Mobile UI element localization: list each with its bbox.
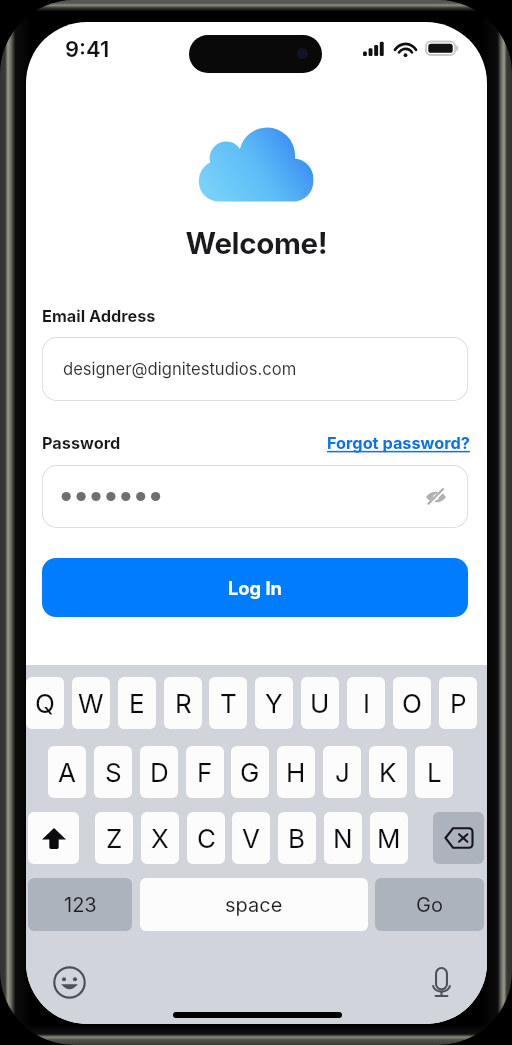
staticText: F [197,757,213,788]
button[interactable]: B [278,812,316,864]
staticText: Y [265,688,283,719]
button[interactable]: Z [95,812,133,864]
staticText: E [129,688,145,719]
staticText: 9:41 [65,36,110,63]
staticText: designer@dignitestudios.com [63,359,297,379]
staticText: N [333,823,353,854]
staticText: 123 [64,893,97,917]
button[interactable]: W [72,677,110,729]
button[interactable]: Log In [42,558,468,617]
button[interactable]: Emoji keyboard [53,966,86,999]
button[interactable]: O [393,677,431,729]
button[interactable]: G [231,746,269,798]
staticText: Password [42,433,121,453]
button[interactable]: S [94,746,132,798]
button[interactable]: L [415,746,453,798]
button[interactable]: designer@dignitestudios.com [42,337,468,401]
staticText: T [220,688,237,719]
staticText: Welcome! [26,225,487,261]
button[interactable]: Forgot password? [327,433,470,453]
button[interactable]: space [140,878,368,931]
button[interactable]: J [323,746,361,798]
staticText: H [286,757,306,788]
staticText: S [105,757,122,788]
staticText: Q [35,688,55,719]
staticText: L [427,757,442,788]
button[interactable]: X [141,812,179,864]
staticText: Email Address [42,306,156,326]
button[interactable]: R [164,677,202,729]
staticText: C [197,823,216,854]
button[interactable]: 123 [28,878,132,931]
staticText: O [402,688,422,719]
button[interactable]: Show password [42,465,468,528]
button[interactable]: T [209,677,247,729]
button[interactable]: Go [375,878,484,931]
staticText: Z [106,823,123,854]
staticText: W [78,688,104,719]
button[interactable]: Show password [420,465,452,528]
button[interactable]: P [439,677,477,729]
staticText: Forgot password? [327,433,470,453]
staticText: R [175,688,192,719]
button[interactable]: M [370,812,408,864]
staticText: M [377,823,401,854]
staticText: space [225,893,283,917]
button[interactable]: Backspace [433,812,484,864]
button[interactable]: N [324,812,362,864]
staticText: Go [416,893,443,917]
staticText: A [58,757,76,788]
button[interactable]: H [277,746,315,798]
staticText: P [450,688,467,719]
staticText: Log In [228,577,282,599]
button[interactable]: Shift [28,812,79,864]
button[interactable]: U [301,677,339,729]
button[interactable]: V [232,812,270,864]
button[interactable]: Dictation [432,967,451,997]
staticText: I [363,688,370,719]
button[interactable]: C [187,812,225,864]
button[interactable]: Q [26,677,64,729]
button[interactable]: K [369,746,407,798]
staticText: G [240,757,260,788]
button[interactable]: D [140,746,178,798]
staticText: B [288,823,306,854]
staticText: U [310,688,330,719]
button[interactable]: Y [255,677,293,729]
button[interactable]: A [48,746,86,798]
staticText: X [151,823,169,854]
staticText: J [335,757,350,788]
staticText: V [242,823,260,854]
staticText: K [379,757,397,788]
staticText: D [150,757,169,788]
button[interactable]: I [347,677,385,729]
button[interactable]: E [118,677,156,729]
button[interactable]: F [186,746,224,798]
